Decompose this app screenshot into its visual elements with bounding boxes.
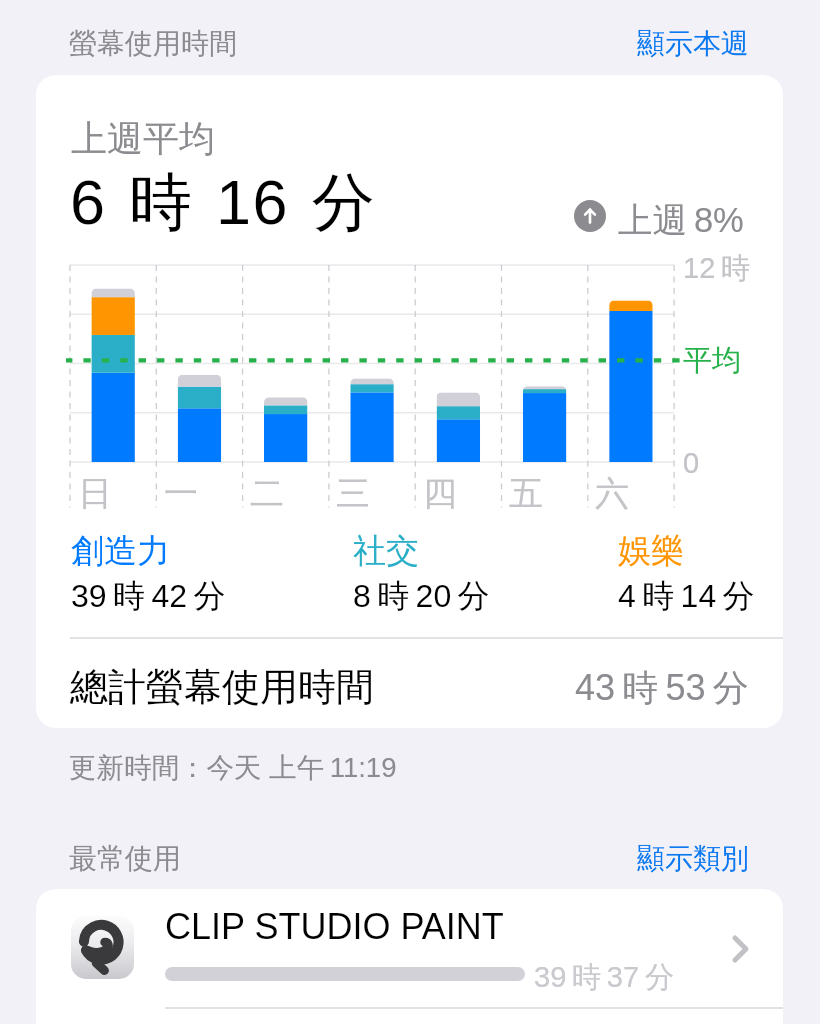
staticText: 39 時 42 分 xyxy=(71,576,226,616)
staticText: 12 時 xyxy=(683,250,751,287)
staticText: 日 xyxy=(78,472,112,515)
staticText: 總計螢幕使用時間 xyxy=(70,663,374,711)
staticText: 三 xyxy=(336,472,370,515)
staticText: 六 xyxy=(595,472,629,515)
staticText: CLIP STUDIO PAINT xyxy=(165,906,504,946)
staticText: 二 xyxy=(250,472,284,515)
staticText: 上週平均 xyxy=(71,116,215,161)
staticText: 社交 xyxy=(353,530,419,572)
staticText: 五 xyxy=(509,472,543,515)
staticText: 創造力 xyxy=(71,530,170,572)
staticText: 顯示本週 xyxy=(637,26,749,61)
staticText: 四 xyxy=(423,472,457,515)
button[interactable]: 顯示本週 xyxy=(622,16,764,71)
staticText: 6 時 16 分 xyxy=(70,163,377,242)
button[interactable]: 顯示類別 xyxy=(622,831,764,886)
other: Show app details xyxy=(732,935,749,963)
staticText: 39 時 37 分 xyxy=(534,959,674,996)
staticText: 顯示類別 xyxy=(637,841,749,876)
button[interactable]: CLIP STUDIO PAINT xyxy=(36,889,783,1007)
button[interactable]: 總計螢幕使用時間 xyxy=(36,642,783,728)
staticText: 0 xyxy=(683,447,700,479)
staticText: 更新時間：今天 上午 11:19 xyxy=(69,751,397,786)
staticText: 8 時 20 分 xyxy=(353,576,490,616)
staticText: 娛樂 xyxy=(618,530,684,572)
staticText: 平均 xyxy=(683,342,741,379)
staticText: 上週 8% xyxy=(618,199,744,242)
staticText: 最常使用 xyxy=(69,841,181,876)
staticText: 43 時 53 分 xyxy=(575,665,749,710)
other: Increase compared with last week xyxy=(574,200,606,232)
staticText: 一 xyxy=(164,472,198,515)
staticText: 螢幕使用時間 xyxy=(69,26,237,61)
staticText: 4 時 14 分 xyxy=(618,576,755,616)
